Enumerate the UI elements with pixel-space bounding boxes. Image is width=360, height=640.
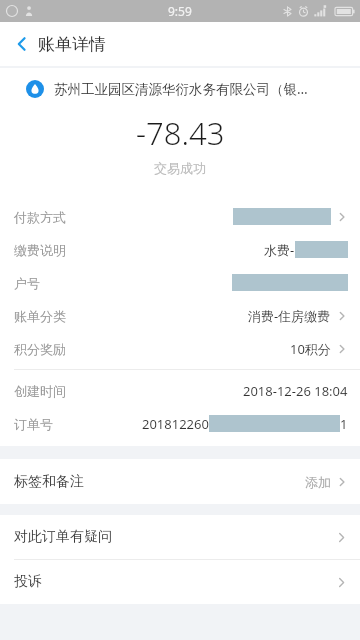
staticText: 2018-12-26 18:04 <box>243 382 348 400</box>
staticText: 1 <box>340 415 348 433</box>
button[interactable]: 标签和备注 <box>0 459 360 504</box>
staticText: 201812260 <box>142 415 209 433</box>
staticText: 10积分 <box>290 340 331 358</box>
staticText: 消费-住房缴费 <box>248 307 331 325</box>
button[interactable]: Back <box>0 22 44 66</box>
button[interactable]: 付款方式 <box>0 200 360 233</box>
staticText: -78.43 <box>136 112 225 154</box>
staticText: 创建时间 <box>14 383 66 399</box>
button[interactable]: 创建时间 <box>0 374 360 407</box>
button[interactable]: 户号 <box>0 266 360 299</box>
staticText: 对此订单有疑问 <box>14 528 112 546</box>
staticText: 苏州工业园区清源华衍水务有限公司（银… <box>54 80 308 98</box>
button[interactable]: 账单分类 <box>0 299 360 332</box>
staticText: 水费- <box>264 241 295 259</box>
button[interactable]: 订单号 <box>0 407 360 440</box>
staticText: 添加 <box>305 474 331 490</box>
staticText: 户号 <box>14 275 40 291</box>
staticText: 账单详情 <box>38 34 106 55</box>
staticText: 积分奖励 <box>14 341 66 357</box>
button[interactable]: 对此订单有疑问 <box>0 515 360 559</box>
button[interactable]: 积分奖励 <box>0 332 360 365</box>
staticText: 账单分类 <box>14 308 66 324</box>
staticText: 交易成功 <box>154 160 206 176</box>
staticText: 标签和备注 <box>14 473 84 491</box>
staticText: 付款方式 <box>14 209 66 225</box>
button[interactable]: 缴费说明 <box>0 233 360 266</box>
staticText: 缴费说明 <box>14 242 66 258</box>
button[interactable]: 投诉 <box>0 560 360 604</box>
staticText: 投诉 <box>14 573 42 591</box>
staticText: 9:59 <box>168 3 192 19</box>
staticText: 订单号 <box>14 416 53 432</box>
